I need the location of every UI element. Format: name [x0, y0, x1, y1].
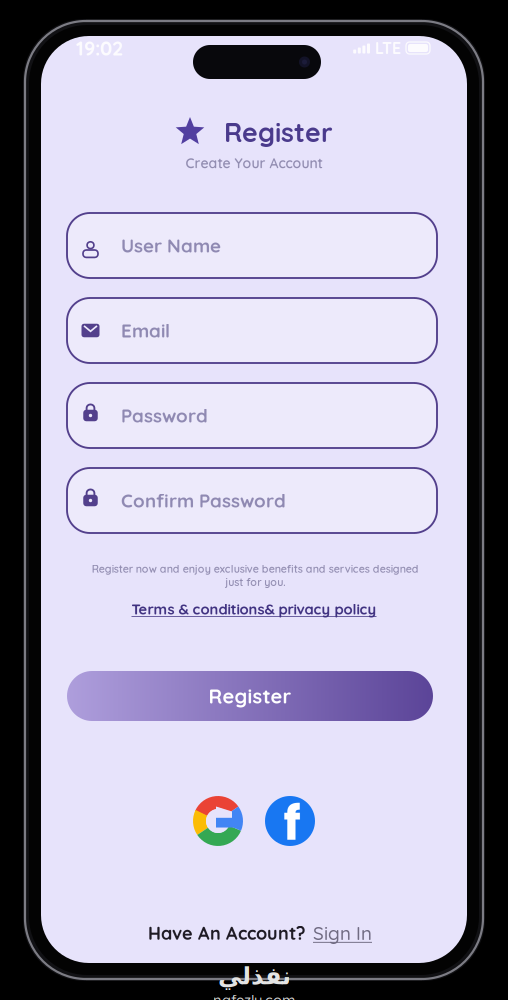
staticText: Create Your Account: [185, 154, 322, 172]
button[interactable]: Sign up with Facebook: [265, 796, 315, 846]
staticText: Email: [121, 319, 170, 342]
staticText: Register: [224, 115, 333, 149]
staticText: Have An Account?: [148, 922, 305, 944]
button[interactable]: Email: [67, 298, 437, 363]
button[interactable]: Confirm Password: [67, 468, 437, 533]
staticText: Sign In: [313, 921, 372, 945]
staticText: User Name: [121, 234, 221, 257]
button[interactable]: User Name: [67, 213, 437, 278]
staticText: Register: [208, 683, 291, 708]
button[interactable]: Register: [67, 671, 433, 721]
staticText: Password: [121, 404, 208, 427]
button[interactable]: Sign up with Google: [193, 796, 243, 846]
staticText: 19:02: [76, 35, 123, 60]
staticText: f: [283, 789, 300, 857]
staticText: LTE: [375, 38, 401, 58]
button[interactable]: Sign In: [313, 921, 372, 945]
staticText: nafezly.com: [213, 991, 295, 1000]
staticText: Confirm Password: [121, 489, 286, 512]
button[interactable]: Terms & conditions& privacy policy: [41, 600, 467, 618]
button[interactable]: Password: [67, 383, 437, 448]
staticText: Register now and enjoy exclusive benefit…: [91, 562, 418, 589]
staticText: نفذلي: [217, 962, 290, 990]
staticText: Terms & conditions& privacy policy: [131, 600, 376, 618]
